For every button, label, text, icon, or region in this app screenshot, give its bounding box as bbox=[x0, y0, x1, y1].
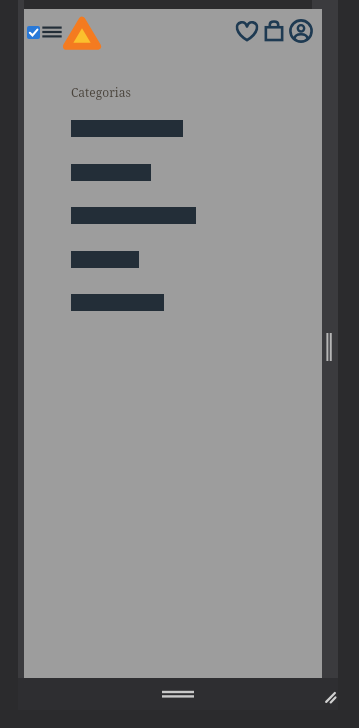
button[interactable]: Logo bbox=[64, 16, 100, 52]
button[interactable]: Cart bbox=[261, 18, 287, 44]
button[interactable]: Account bbox=[287, 18, 315, 44]
staticText: Categorias bbox=[71, 84, 131, 100]
button[interactable]: Select bbox=[27, 26, 40, 39]
button[interactable]: Menu bbox=[41, 22, 63, 42]
button[interactable]: Favorites bbox=[233, 18, 261, 44]
other: Resize bbox=[322, 689, 336, 703]
button[interactable]: Categorias bbox=[71, 84, 131, 100]
